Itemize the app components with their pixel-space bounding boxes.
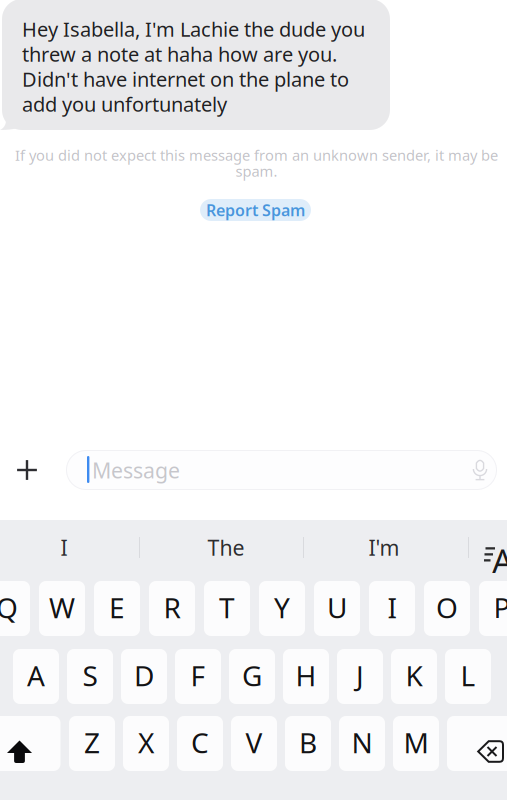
button[interactable]: L — [445, 649, 491, 704]
button[interactable]: I'm — [304, 520, 467, 575]
button[interactable]: I — [369, 581, 415, 636]
button[interactable]: H — [283, 649, 329, 704]
button[interactable]: Report Spam — [200, 199, 311, 221]
staticText: U — [327, 589, 347, 626]
button[interactable]: Record audio message — [463, 453, 497, 487]
button[interactable]: S — [67, 649, 113, 704]
button[interactable]: Z — [69, 716, 115, 771]
staticText: I'm — [368, 533, 399, 562]
staticText: A — [492, 538, 507, 583]
staticText: X — [138, 724, 154, 761]
staticText: W — [49, 589, 75, 626]
staticText: B — [299, 724, 317, 761]
button[interactable]: E — [94, 581, 140, 636]
staticText: V — [245, 724, 262, 761]
button[interactable]: W — [39, 581, 85, 636]
staticText: K — [405, 657, 422, 694]
staticText: threw a note at haha how are you. — [22, 41, 337, 67]
staticText: I — [60, 533, 67, 562]
button[interactable]: G — [229, 649, 275, 704]
button[interactable]: Y — [259, 581, 305, 636]
staticText: T — [219, 589, 235, 626]
staticText: Message — [92, 456, 180, 484]
staticText: M — [403, 724, 428, 761]
staticText: P — [493, 589, 507, 626]
staticText: Y — [274, 589, 290, 626]
button[interactable]: Q — [0, 581, 30, 636]
button[interactable]: K — [391, 649, 437, 704]
button[interactable]: P — [479, 581, 507, 636]
button[interactable]: Message — [66, 450, 497, 490]
staticText: D — [134, 657, 154, 694]
staticText: Q — [0, 589, 18, 626]
staticText: A — [27, 657, 45, 694]
button[interactable]: Text formatting — [484, 540, 507, 595]
staticText: O — [436, 589, 458, 626]
staticText: S — [82, 657, 97, 694]
button[interactable]: N — [339, 716, 385, 771]
button[interactable]: J — [337, 649, 383, 704]
button[interactable]: X — [123, 716, 169, 771]
staticText: E — [109, 589, 125, 626]
staticText: C — [191, 724, 209, 761]
staticText: Report Spam — [206, 199, 305, 221]
button[interactable]: Shift — [0, 716, 60, 771]
staticText: spam. — [235, 161, 277, 181]
button[interactable]: Delete — [447, 716, 507, 771]
button[interactable]: O — [424, 581, 470, 636]
staticText: Z — [84, 724, 100, 761]
button[interactable]: T — [204, 581, 250, 636]
staticText: H — [295, 657, 316, 694]
button[interactable]: The — [140, 520, 302, 575]
button[interactable]: C — [177, 716, 223, 771]
button[interactable]: V — [231, 716, 277, 771]
staticText: N — [351, 724, 372, 761]
staticText: I — [387, 589, 396, 626]
staticText: If you did not expect this message from … — [15, 145, 498, 165]
staticText: add you unfortunately — [22, 91, 227, 117]
button[interactable]: Attach — [1, 446, 53, 494]
staticText: L — [460, 657, 475, 694]
button[interactable]: I — [0, 520, 139, 575]
button[interactable]: U — [314, 581, 360, 636]
staticText: Hey Isabella, I'm Lachie the dude you — [22, 16, 365, 42]
button[interactable]: D — [121, 649, 167, 704]
staticText: J — [356, 657, 364, 694]
button[interactable]: B — [285, 716, 331, 771]
button[interactable]: M — [393, 716, 439, 771]
button[interactable]: A — [13, 649, 59, 704]
button[interactable]: R — [149, 581, 195, 636]
staticText: F — [190, 657, 205, 694]
staticText: G — [242, 657, 262, 694]
button[interactable]: F — [175, 649, 221, 704]
staticText: The — [207, 533, 244, 562]
staticText: Didn't have internet on the plane to — [22, 66, 349, 92]
staticText: R — [163, 589, 180, 626]
